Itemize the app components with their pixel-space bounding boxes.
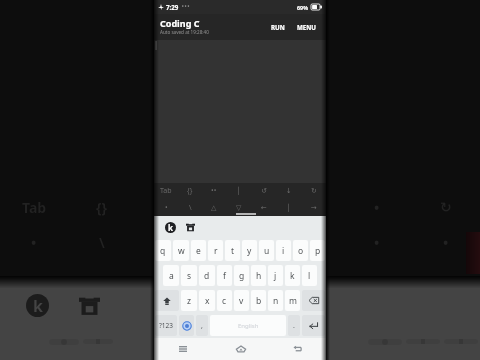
- staticText: ▽: [236, 204, 242, 212]
- staticText: →: [311, 204, 317, 212]
- button[interactable]: y: [242, 240, 257, 261]
- staticText: s: [187, 270, 192, 282]
- staticText: k: [290, 270, 295, 282]
- staticText: x: [205, 295, 210, 307]
- staticText: ▲: [165, 234, 176, 250]
- button[interactable]: u: [259, 240, 274, 261]
- staticText: 69%: [297, 4, 309, 11]
- button[interactable]: Keyboard settings: [165, 222, 176, 233]
- button[interactable]: p: [310, 240, 325, 261]
- button[interactable]: s: [181, 265, 197, 286]
- button[interactable]: Tab: [154, 183, 178, 199]
- button[interactable]: │: [276, 199, 301, 216]
- button[interactable]: •: [154, 199, 178, 216]
- staticText: •: [374, 198, 380, 217]
- staticText: o: [298, 245, 304, 257]
- staticText: j: [274, 270, 277, 282]
- button[interactable]: c: [217, 290, 232, 311]
- button[interactable]: Back: [269, 338, 326, 360]
- button[interactable]: n: [268, 290, 283, 311]
- button[interactable]: x: [199, 290, 215, 311]
- staticText: r: [214, 245, 218, 257]
- staticText: b: [256, 295, 262, 307]
- staticText: •: [374, 233, 380, 252]
- button[interactable]: Recent apps: [154, 338, 212, 360]
- button[interactable]: │: [226, 183, 251, 199]
- staticText: e: [196, 245, 201, 257]
- button[interactable]: t: [225, 240, 240, 261]
- button[interactable]: ,: [196, 315, 208, 336]
- button[interactable]: b: [251, 290, 266, 311]
- button[interactable]: l: [302, 265, 317, 286]
- staticText: │: [286, 204, 291, 212]
- staticText: •: [443, 233, 449, 252]
- staticText: g: [239, 270, 245, 282]
- button[interactable]: d: [199, 265, 215, 286]
- button[interactable]: ↓: [276, 183, 301, 199]
- button[interactable]: m: [285, 290, 300, 311]
- button[interactable]: ↺: [251, 183, 276, 199]
- button[interactable]: →: [301, 199, 326, 216]
- button[interactable]: ↻: [301, 183, 326, 199]
- staticText: {}: [187, 186, 193, 196]
- button[interactable]: j: [268, 265, 283, 286]
- button[interactable]: {}: [178, 183, 202, 199]
- button[interactable]: r: [208, 240, 223, 261]
- button[interactable]: ▽: [226, 199, 251, 216]
- button[interactable]: MENU: [294, 19, 320, 35]
- button[interactable]: Clipboard: [185, 222, 196, 233]
- staticText: •: [31, 233, 37, 252]
- button[interactable]: q: [155, 240, 171, 261]
- button[interactable]: △: [202, 199, 226, 216]
- staticText: Coding C: [160, 17, 200, 29]
- staticText: ←: [261, 204, 267, 212]
- staticText: u: [264, 245, 270, 257]
- staticText: |: [235, 198, 243, 217]
- button[interactable]: w: [173, 240, 189, 261]
- button[interactable]: .: [288, 315, 300, 336]
- staticText: p: [315, 245, 321, 257]
- button[interactable]: g: [234, 265, 249, 286]
- button[interactable]: ••: [202, 183, 226, 199]
- staticText: t: [231, 245, 235, 257]
- button[interactable]: Shift: [155, 290, 179, 311]
- button[interactable]: a: [163, 265, 179, 286]
- staticText: q: [160, 245, 166, 257]
- staticText: l: [308, 270, 311, 282]
- staticText: \: [99, 233, 105, 252]
- staticText: y: [247, 245, 252, 257]
- staticText: h: [256, 270, 262, 282]
- button[interactable]: h: [251, 265, 266, 286]
- button[interactable]: z: [181, 290, 197, 311]
- staticText: 7:29: [166, 3, 179, 11]
- button[interactable]: f: [217, 265, 232, 286]
- button[interactable]: Enter: [302, 315, 325, 336]
- button[interactable]: v: [234, 290, 249, 311]
- button[interactable]: i: [276, 240, 291, 261]
- button[interactable]: Backspace: [302, 290, 325, 311]
- staticText: c: [222, 295, 227, 307]
- button[interactable]: Emoji: [179, 315, 194, 336]
- staticText: RUN: [271, 23, 285, 31]
- button[interactable]: Space: [210, 315, 286, 336]
- staticText: ••: [211, 186, 217, 196]
- button[interactable]: o: [293, 240, 308, 261]
- staticText: •: [165, 203, 168, 213]
- button[interactable]: ?123: [155, 315, 177, 336]
- button[interactable]: Home: [212, 338, 269, 360]
- staticText: MENU: [297, 23, 317, 31]
- button[interactable]: e: [191, 240, 206, 261]
- staticText: m: [289, 295, 297, 307]
- button[interactable]: \: [178, 199, 202, 216]
- staticText: │: [236, 187, 241, 195]
- button[interactable]: k: [285, 265, 300, 286]
- staticText: Tab: [22, 198, 47, 217]
- staticText: △: [211, 204, 217, 212]
- button[interactable]: RUN: [268, 19, 288, 35]
- button[interactable]: ←: [251, 199, 276, 216]
- staticText: i: [282, 245, 285, 257]
- staticText: k: [33, 295, 43, 317]
- staticText: Auto saved at 19:28:40: [160, 29, 209, 35]
- staticText: v: [239, 295, 244, 307]
- staticText: z: [187, 295, 191, 307]
